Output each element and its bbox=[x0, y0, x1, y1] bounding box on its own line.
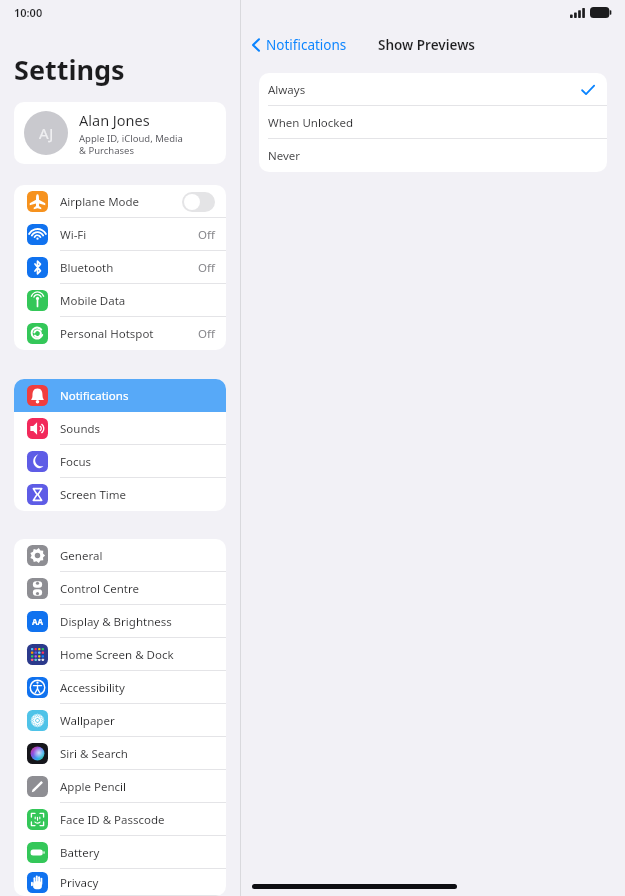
staticText: Notifications bbox=[266, 36, 347, 54]
staticText: AA bbox=[32, 616, 44, 627]
button[interactable]: Face ID & Passcode bbox=[14, 803, 226, 836]
button[interactable]: AJ bbox=[14, 102, 226, 164]
staticText: Accessibility bbox=[60, 680, 215, 696]
button[interactable]: Airplane Mode toggle, off bbox=[182, 192, 215, 212]
staticText: Alan Jones bbox=[79, 110, 150, 130]
button[interactable]: Never bbox=[259, 139, 607, 172]
staticText: Never bbox=[268, 148, 595, 164]
button[interactable]: Home Screen & Dock bbox=[14, 638, 226, 671]
button[interactable]: Accessibility bbox=[14, 671, 226, 704]
staticText: Sounds bbox=[60, 421, 215, 437]
button[interactable]: Personal Hotspot bbox=[14, 317, 226, 350]
staticText: AJ bbox=[39, 123, 54, 143]
staticText: Screen Time bbox=[60, 487, 215, 503]
button[interactable]: When Unlocked bbox=[259, 106, 607, 139]
staticText: Home Screen & Dock bbox=[60, 647, 215, 663]
button[interactable]: Privacy bbox=[14, 869, 226, 896]
staticText: Bluetooth bbox=[60, 260, 198, 276]
staticText: Siri & Search bbox=[60, 746, 215, 762]
staticText: Wi-Fi bbox=[60, 227, 198, 243]
button[interactable]: Notifications bbox=[251, 36, 347, 54]
staticText: Wallpaper bbox=[60, 713, 215, 729]
button[interactable]: Always bbox=[259, 73, 607, 106]
staticText: Apple Pencil bbox=[60, 779, 215, 795]
button[interactable]: Screen Time bbox=[14, 478, 226, 511]
staticText: Personal Hotspot bbox=[60, 326, 198, 342]
staticText: Display & Brightness bbox=[60, 614, 215, 630]
staticText: Off bbox=[198, 227, 215, 243]
staticText: 10:00 bbox=[14, 5, 43, 20]
staticText: Settings bbox=[14, 51, 125, 88]
button[interactable]: Apple Pencil bbox=[14, 770, 226, 803]
staticText: Off bbox=[198, 260, 215, 276]
staticText: Notifications bbox=[60, 388, 215, 404]
button[interactable]: Control Centre bbox=[14, 572, 226, 605]
button[interactable]: AA bbox=[14, 605, 226, 638]
staticText: Apple ID, iCloud, Media & Purchases bbox=[79, 132, 183, 157]
staticText: Off bbox=[198, 326, 215, 342]
button[interactable]: General bbox=[14, 539, 226, 572]
button[interactable]: Battery bbox=[14, 836, 226, 869]
button[interactable]: Sounds bbox=[14, 412, 226, 445]
button[interactable]: Mobile Data bbox=[14, 284, 226, 317]
button[interactable]: Notifications bbox=[14, 379, 226, 412]
staticText: Privacy bbox=[60, 875, 215, 891]
button[interactable]: Wi-Fi bbox=[14, 218, 226, 251]
staticText: Focus bbox=[60, 454, 215, 470]
button[interactable]: Focus bbox=[14, 445, 226, 478]
button[interactable]: Bluetooth bbox=[14, 251, 226, 284]
staticText: Battery bbox=[60, 845, 215, 861]
staticText: Show Previews bbox=[378, 36, 476, 54]
staticText: Mobile Data bbox=[60, 293, 215, 309]
button[interactable]: Siri & Search bbox=[14, 737, 226, 770]
staticText: Control Centre bbox=[60, 581, 215, 597]
staticText: Face ID & Passcode bbox=[60, 812, 215, 828]
button[interactable]: Airplane Mode bbox=[14, 185, 226, 218]
staticText: Airplane Mode bbox=[60, 194, 182, 210]
staticText: General bbox=[60, 548, 215, 564]
staticText: When Unlocked bbox=[268, 115, 595, 131]
button[interactable]: Wallpaper bbox=[14, 704, 226, 737]
staticText: Always bbox=[268, 82, 581, 98]
